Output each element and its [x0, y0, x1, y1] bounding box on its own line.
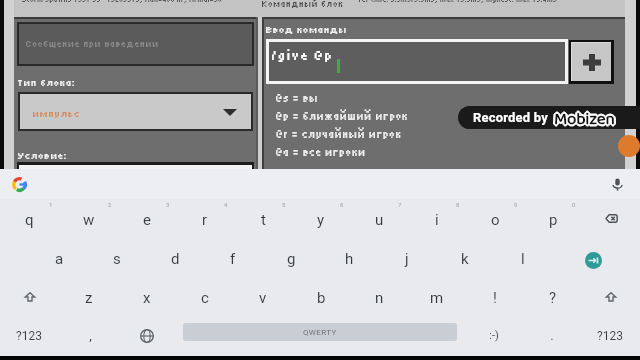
staticText: @a = все игроки [276, 146, 367, 158]
button[interactable]: q [0, 199, 59, 238]
staticText: @r = случайный игрок [276, 128, 402, 140]
staticText: m [430, 289, 444, 307]
staticText: u [375, 211, 384, 229]
button[interactable]: QWERTY [183, 323, 457, 341]
button[interactable]: Shift [0, 277, 59, 316]
button[interactable]: /give @p [269, 42, 565, 81]
staticText: 4 [224, 201, 228, 208]
staticText: v [259, 289, 267, 307]
button[interactable]: d [146, 238, 204, 277]
staticText: ! [493, 289, 497, 307]
button[interactable]: w [59, 199, 118, 238]
button[interactable]: ? [524, 277, 582, 316]
staticText: . [550, 328, 554, 343]
button[interactable]: t [234, 199, 292, 238]
button[interactable]: r [176, 199, 234, 238]
button[interactable]: y [292, 199, 350, 238]
staticText: q [25, 211, 34, 229]
staticText: x [143, 289, 151, 307]
staticText: i [435, 211, 439, 229]
button[interactable]: Google search [8, 173, 30, 195]
staticText: p [549, 211, 558, 229]
staticText: n [375, 289, 384, 307]
button[interactable]: Backspace [582, 199, 640, 238]
button[interactable]: b [292, 277, 350, 316]
staticText: Тип блока: [18, 77, 76, 89]
button[interactable]: Сообщение при наведении [19, 24, 252, 64]
staticText: Сообщение при наведении [26, 39, 160, 50]
staticText: Storm spawns 1597 59 -13289575; Hail=460… [22, 0, 223, 4]
button[interactable]: p [524, 199, 582, 238]
staticText: 1 [49, 201, 53, 208]
button[interactable]: ?123 [580, 316, 640, 355]
button[interactable]: :-) [465, 316, 523, 355]
button[interactable]: v [234, 277, 292, 316]
button[interactable]: Mobizen recorder [618, 135, 640, 157]
staticText: 5 [282, 201, 286, 208]
other: Shift [606, 292, 616, 302]
button[interactable]: импульс [20, 94, 251, 129]
staticText: импульс [33, 108, 81, 120]
staticText: c [201, 289, 209, 307]
staticText: f [230, 250, 236, 268]
button[interactable]: m [408, 277, 466, 316]
staticText: d [171, 250, 180, 268]
button[interactable]: , [58, 316, 122, 355]
button[interactable]: i [408, 199, 466, 238]
staticText: t [261, 211, 266, 229]
staticText: r [202, 211, 208, 229]
staticText: Mobizen [553, 107, 614, 129]
staticText: k [461, 250, 469, 268]
button[interactable]: s [88, 238, 146, 277]
staticText: Mobizen [554, 108, 615, 129]
staticText: ? [549, 289, 557, 307]
staticText: 9 [514, 201, 518, 208]
button[interactable]: k [436, 238, 494, 277]
staticText: Ввод команды [266, 24, 348, 36]
button[interactable]: f [204, 238, 262, 277]
staticText: 8 [456, 201, 460, 208]
button[interactable]: a [30, 238, 88, 277]
staticText: g [287, 250, 296, 268]
staticText: Mobizen [554, 106, 615, 127]
staticText: z [85, 289, 93, 307]
staticText: a [55, 250, 64, 268]
button[interactable]: l [494, 238, 552, 277]
button[interactable]: Voice input [607, 174, 627, 194]
button[interactable]: x [118, 277, 176, 316]
button[interactable]: j [378, 238, 436, 277]
button[interactable]: Switch language [122, 316, 172, 355]
staticText: Ver time: 9.9ms/9.9ms; max 13.5ms; highe… [358, 0, 558, 4]
staticText: Условие: [18, 150, 68, 162]
button[interactable]: u [350, 199, 408, 238]
staticText: Mobizen [555, 106, 616, 128]
button[interactable]: o [466, 199, 524, 238]
staticText: j [405, 250, 409, 268]
button[interactable]: Add command [572, 43, 611, 81]
button[interactable]: c [176, 277, 234, 316]
button[interactable]: ! [466, 277, 524, 316]
button[interactable]: h [320, 238, 378, 277]
staticText: h [345, 250, 354, 268]
button[interactable]: n [350, 277, 408, 316]
staticText: Mobizen [552, 106, 613, 129]
staticText: @s = вы [276, 92, 319, 104]
button[interactable]: Next field [585, 252, 602, 269]
staticText: @p = ближайший игрок [276, 110, 409, 122]
staticText: 7 [398, 201, 402, 208]
staticText: Mobizen [554, 106, 615, 129]
staticText: 0 [572, 201, 576, 208]
button[interactable]: e [118, 199, 176, 238]
button[interactable]: z [59, 277, 118, 316]
button[interactable]: Shift [582, 277, 640, 316]
button[interactable]: ?123 [0, 316, 58, 355]
staticText: 3 [166, 201, 170, 208]
staticText: ?123 [597, 329, 623, 343]
staticText: Mobizen [555, 107, 616, 129]
staticText: e [143, 211, 151, 229]
staticText: w [83, 211, 95, 229]
button[interactable]: g [262, 238, 320, 277]
staticText: b [317, 289, 326, 307]
staticText: s [113, 250, 121, 268]
